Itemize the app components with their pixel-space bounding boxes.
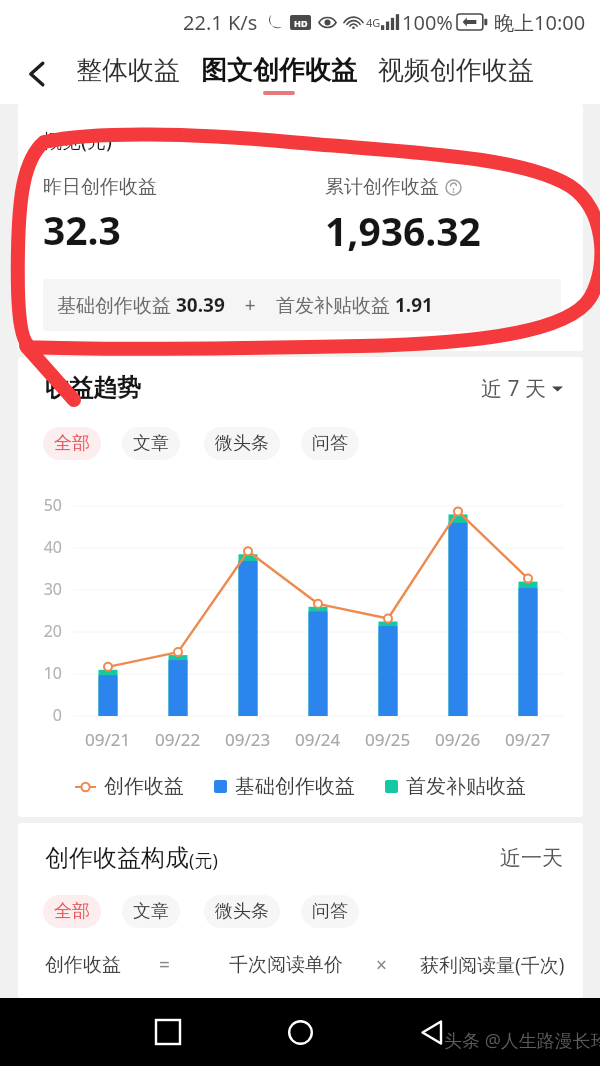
button[interactable]: 全部 bbox=[43, 427, 101, 460]
button[interactable]: Home bbox=[288, 998, 313, 1066]
staticText: 09/25 bbox=[365, 728, 411, 751]
staticText: 图文创作收益 bbox=[201, 54, 357, 87]
staticText: 累计创作收益 bbox=[325, 175, 439, 199]
staticText: 微头条 bbox=[215, 900, 269, 923]
staticText: HD bbox=[294, 17, 308, 29]
button[interactable]: Back bbox=[420, 998, 445, 1066]
staticText: 32.3 bbox=[43, 203, 121, 256]
staticText: 09/22 bbox=[155, 728, 201, 751]
staticText: 视频创作收益 bbox=[378, 54, 534, 87]
staticText: 首发补贴收益 bbox=[406, 774, 526, 799]
staticText: 30.39 bbox=[176, 292, 225, 318]
button[interactable]: 视频创作收益 bbox=[378, 51, 534, 98]
button[interactable]: Back bbox=[0, 44, 76, 104]
staticText: 全部 bbox=[54, 432, 90, 455]
staticText: 近一天 bbox=[500, 845, 563, 871]
staticText: 基础创作收益 bbox=[57, 292, 176, 318]
staticText: 40 bbox=[30, 536, 62, 558]
staticText: 问答 bbox=[312, 432, 348, 455]
button[interactable]: 文章 bbox=[122, 427, 180, 460]
staticText: 概览(元) bbox=[43, 128, 112, 154]
staticText: 100% bbox=[402, 9, 453, 36]
staticText: 昨日创作收益 bbox=[43, 175, 157, 199]
staticText: 创作收益 bbox=[104, 774, 184, 799]
staticText: 50 bbox=[30, 494, 62, 516]
staticText: 微头条 bbox=[215, 432, 269, 455]
button[interactable]: 问答 bbox=[301, 895, 359, 928]
button[interactable]: 图文创作收益 bbox=[201, 51, 357, 98]
button[interactable]: 微头条 bbox=[204, 895, 280, 928]
button[interactable]: 全部 bbox=[43, 895, 101, 928]
button[interactable]: Recents bbox=[155, 998, 180, 1066]
button[interactable]: 近 7 天 bbox=[481, 374, 563, 403]
staticText: 10 bbox=[30, 662, 62, 684]
staticText: 30 bbox=[30, 578, 62, 600]
staticText: 收益趋势 bbox=[45, 373, 141, 403]
button[interactable]: 文章 bbox=[122, 895, 180, 928]
staticText: 09/27 bbox=[505, 728, 551, 751]
staticText: = bbox=[159, 952, 170, 978]
button[interactable]: 整体收益 bbox=[76, 51, 180, 98]
staticText: 全部 bbox=[54, 900, 90, 923]
staticText: 0 bbox=[30, 704, 62, 726]
staticText: × bbox=[376, 952, 387, 978]
staticText: 首发补贴收益 bbox=[276, 292, 395, 318]
staticText: 1,936.32 bbox=[325, 204, 481, 257]
staticText: + bbox=[225, 292, 276, 318]
staticText: 获利阅读量(千次) bbox=[420, 952, 565, 978]
staticText: (元) bbox=[189, 848, 218, 873]
staticText: 22.1 K/s bbox=[183, 9, 258, 36]
staticText: 09/26 bbox=[435, 728, 481, 751]
staticText: 文章 bbox=[133, 900, 169, 923]
staticText: 09/21 bbox=[85, 728, 131, 751]
staticText: 近 7 天 bbox=[481, 374, 546, 403]
staticText: 晚上10:00 bbox=[494, 9, 586, 36]
staticText: 创作收益构成 bbox=[45, 843, 189, 873]
staticText: 09/23 bbox=[225, 728, 271, 751]
button[interactable]: 微头条 bbox=[204, 427, 280, 460]
staticText: 整体收益 bbox=[76, 54, 180, 87]
staticText: 09/24 bbox=[295, 728, 341, 751]
staticText: 文章 bbox=[133, 432, 169, 455]
button[interactable]: 问答 bbox=[301, 427, 359, 460]
staticText: 4G bbox=[366, 15, 381, 30]
staticText: 基础创作收益 bbox=[235, 774, 355, 799]
staticText: 创作收益 bbox=[45, 953, 121, 977]
staticText: 1.91 bbox=[395, 292, 433, 318]
staticText: 千次阅读单价 bbox=[229, 953, 343, 977]
staticText: 20 bbox=[30, 620, 62, 642]
staticText: 头条 @人生路漫长玲 bbox=[444, 1028, 600, 1053]
staticText: 问答 bbox=[312, 900, 348, 923]
